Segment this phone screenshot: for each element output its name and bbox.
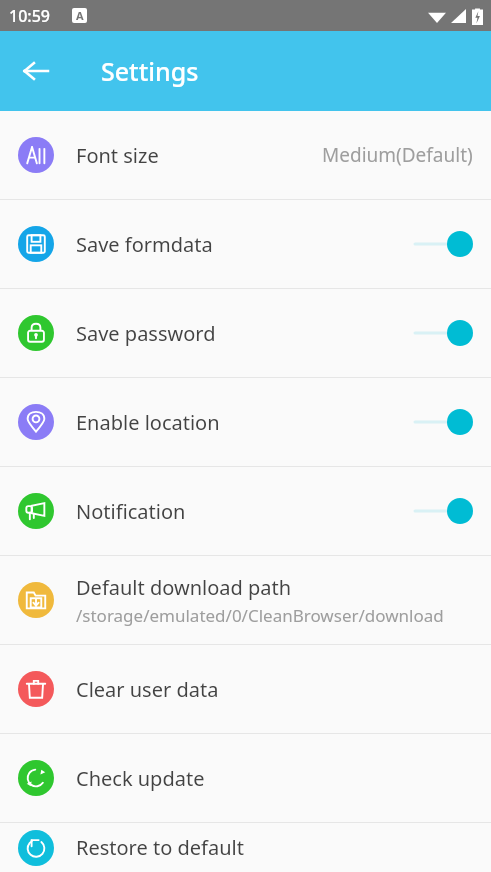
button[interactable]: Clear user data [0,645,491,733]
staticText: Medium(Default) [322,142,473,168]
button[interactable]: Check update [0,734,491,822]
staticText: Font size [76,142,159,169]
button[interactable]: Enable location [0,378,491,466]
staticText: A [76,8,84,23]
button[interactable]: Save formdata toggle, on [415,227,473,261]
staticText: Restore to default [76,834,244,861]
staticText: Save password [76,320,216,347]
button[interactable]: Font size [0,111,491,199]
button[interactable]: Save password [0,289,491,377]
button[interactable]: Default download path [0,556,491,644]
staticText: Clear user data [76,676,219,703]
button[interactable]: Save formdata [0,200,491,288]
button[interactable]: Save password toggle, on [415,316,473,350]
button[interactable]: Restore to default [0,823,491,872]
staticText: Settings [101,54,199,88]
button[interactable]: Back [8,43,64,99]
staticText: Check update [76,765,205,792]
staticText: Default download path [76,574,292,601]
button[interactable]: Enable location toggle, on [415,405,473,439]
button[interactable]: Notification [0,467,491,555]
staticText: Notification [76,498,186,525]
staticText: 10:59 [9,5,50,27]
staticText: /storage/emulated/0/CleanBrowser/downloa… [76,604,444,627]
button[interactable]: Notification toggle, on [415,494,473,528]
staticText: Enable location [76,409,220,436]
staticText: Save formdata [76,231,213,258]
